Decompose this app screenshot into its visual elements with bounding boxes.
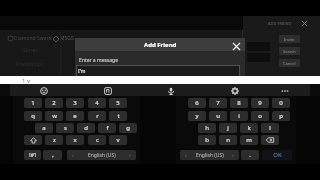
staticText: u (216, 112, 220, 120)
button[interactable]: Add Friend (75, 38, 245, 51)
staticText: b (205, 136, 209, 144)
button[interactable]: 1 v (18, 76, 34, 85)
button[interactable]: 9 (251, 98, 269, 108)
button[interactable]: , (43, 150, 62, 160)
button[interactable]: t (109, 111, 127, 121)
staticText: MSGS (60, 35, 74, 42)
staticText: m (246, 136, 252, 144)
button[interactable]: k (240, 123, 258, 133)
button[interactable]: 1 (24, 98, 42, 108)
button[interactable]: i (230, 111, 248, 121)
staticText: Friendships (16, 61, 44, 68)
button[interactable]: Emoji (38, 85, 50, 97)
button[interactable]: e (66, 111, 84, 121)
button[interactable]: n (219, 135, 237, 145)
button[interactable]: w (45, 111, 63, 121)
staticText: Cancel (283, 61, 296, 66)
staticText: w (52, 112, 57, 120)
button[interactable]: j (219, 123, 237, 133)
button[interactable]: 4 (88, 98, 106, 108)
staticText: 6 (195, 99, 199, 107)
staticText: , (52, 151, 54, 159)
button[interactable]: g (119, 123, 137, 133)
staticText: c (96, 136, 99, 144)
button[interactable]: Close dialog (230, 40, 242, 52)
button[interactable]: o (251, 111, 269, 121)
staticText: 3 (73, 99, 77, 107)
button[interactable]: Invite (279, 35, 300, 43)
button[interactable]: a (35, 123, 53, 133)
staticText: e (73, 112, 77, 120)
staticText: 1 (31, 99, 35, 107)
button[interactable]: Voice input (165, 85, 177, 97)
button[interactable]: Search (279, 47, 300, 55)
staticText: › (232, 151, 234, 159)
button[interactable]: 3 (66, 98, 84, 108)
staticText: h (205, 124, 209, 132)
staticText: I'm (78, 68, 86, 75)
staticText: t (117, 112, 120, 120)
staticText: q (31, 112, 35, 120)
button[interactable]: m (240, 135, 258, 145)
staticText: x (73, 136, 77, 144)
button[interactable]: Shift (24, 135, 42, 145)
staticText: !#1 (29, 152, 37, 159)
button[interactable]: 2 (45, 98, 63, 108)
staticText: Invite (284, 37, 295, 42)
staticText: v (116, 136, 120, 144)
staticText: 5 (116, 99, 120, 107)
button[interactable]: q (24, 111, 42, 121)
button[interactable]: 5 (109, 98, 127, 108)
button[interactable]: I'm (76, 65, 240, 78)
staticText: z (53, 136, 56, 144)
button[interactable]: 0 (272, 98, 290, 108)
staticText: y (195, 112, 199, 120)
button[interactable]: z (45, 135, 63, 145)
staticText: l (269, 124, 271, 132)
staticText: 1 v (22, 77, 31, 85)
button[interactable]: . (241, 150, 259, 160)
button[interactable]: Stickers (102, 85, 114, 97)
button[interactable]: u (209, 111, 227, 121)
button[interactable]: Friendships (10, 60, 50, 69)
button[interactable]: 8 (230, 98, 248, 108)
staticText: p (279, 112, 283, 120)
button[interactable]: Space, English (US) (67, 150, 136, 160)
button[interactable]: p (272, 111, 290, 121)
staticText: 9 (258, 99, 262, 107)
button[interactable]: 7 (209, 98, 227, 108)
staticText: k (247, 124, 251, 132)
button[interactable]: OK (262, 150, 292, 160)
staticText: a (42, 124, 46, 132)
button[interactable]: c (88, 135, 106, 145)
button[interactable]: s (56, 123, 74, 133)
staticText: Enter a message (79, 57, 118, 64)
staticText: s (64, 124, 67, 132)
button[interactable]: f (98, 123, 116, 133)
staticText: English (US) (196, 152, 224, 159)
button[interactable]: b (198, 135, 216, 145)
staticText: 2 (52, 99, 56, 107)
button[interactable]: l (261, 123, 279, 133)
button[interactable]: More options (279, 85, 291, 97)
staticText: j (227, 124, 229, 132)
button[interactable]: Space, English (US) (180, 150, 239, 160)
button[interactable]: r (88, 111, 106, 121)
button[interactable]: 6 (188, 98, 206, 108)
staticText: i (238, 112, 240, 120)
staticText: o (258, 112, 262, 120)
button[interactable]: Backspace (261, 135, 279, 145)
button[interactable]: x (66, 135, 84, 145)
button[interactable]: h (198, 123, 216, 133)
button[interactable]: y (188, 111, 206, 121)
button[interactable]: Keyboard settings (229, 85, 241, 97)
staticText: g (126, 124, 130, 132)
button[interactable]: !#1 (24, 150, 41, 160)
button[interactable]: v (109, 135, 127, 145)
button[interactable]: d (77, 123, 95, 133)
button[interactable]: Cancel (279, 59, 300, 67)
button[interactable]: Close panel (300, 19, 309, 28)
button[interactable]: Stores (12, 46, 48, 55)
